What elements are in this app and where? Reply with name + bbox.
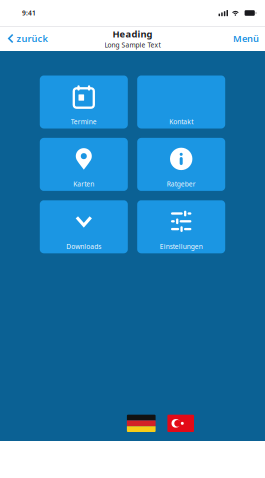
- staticText: Ratgeber: [167, 179, 196, 188]
- button[interactable]: Termine: [40, 75, 128, 128]
- staticText: 9:41: [22, 9, 36, 17]
- button[interactable]: zurück: [0, 27, 47, 50]
- button[interactable]: Einstellungen: [137, 200, 225, 253]
- staticText: Heading: [112, 28, 152, 40]
- button[interactable]: Menü: [233, 27, 265, 50]
- staticText: Downloads: [66, 242, 101, 251]
- button[interactable]: Deutsch: [127, 415, 156, 432]
- staticText: Einstellungen: [160, 242, 203, 251]
- button[interactable]: Karten: [40, 138, 128, 191]
- staticText: zurück: [16, 32, 47, 45]
- button[interactable]: Türkçe: [167, 415, 194, 432]
- staticText: Termine: [71, 117, 97, 126]
- staticText: Karten: [73, 179, 94, 188]
- button[interactable]: Ratgeber: [137, 138, 225, 191]
- staticText: Menü: [233, 32, 259, 45]
- staticText: Long Sample Text: [104, 40, 160, 49]
- staticText: Kontakt: [169, 117, 193, 126]
- button[interactable]: Kontakt: [137, 75, 225, 128]
- button[interactable]: Downloads: [40, 200, 128, 253]
